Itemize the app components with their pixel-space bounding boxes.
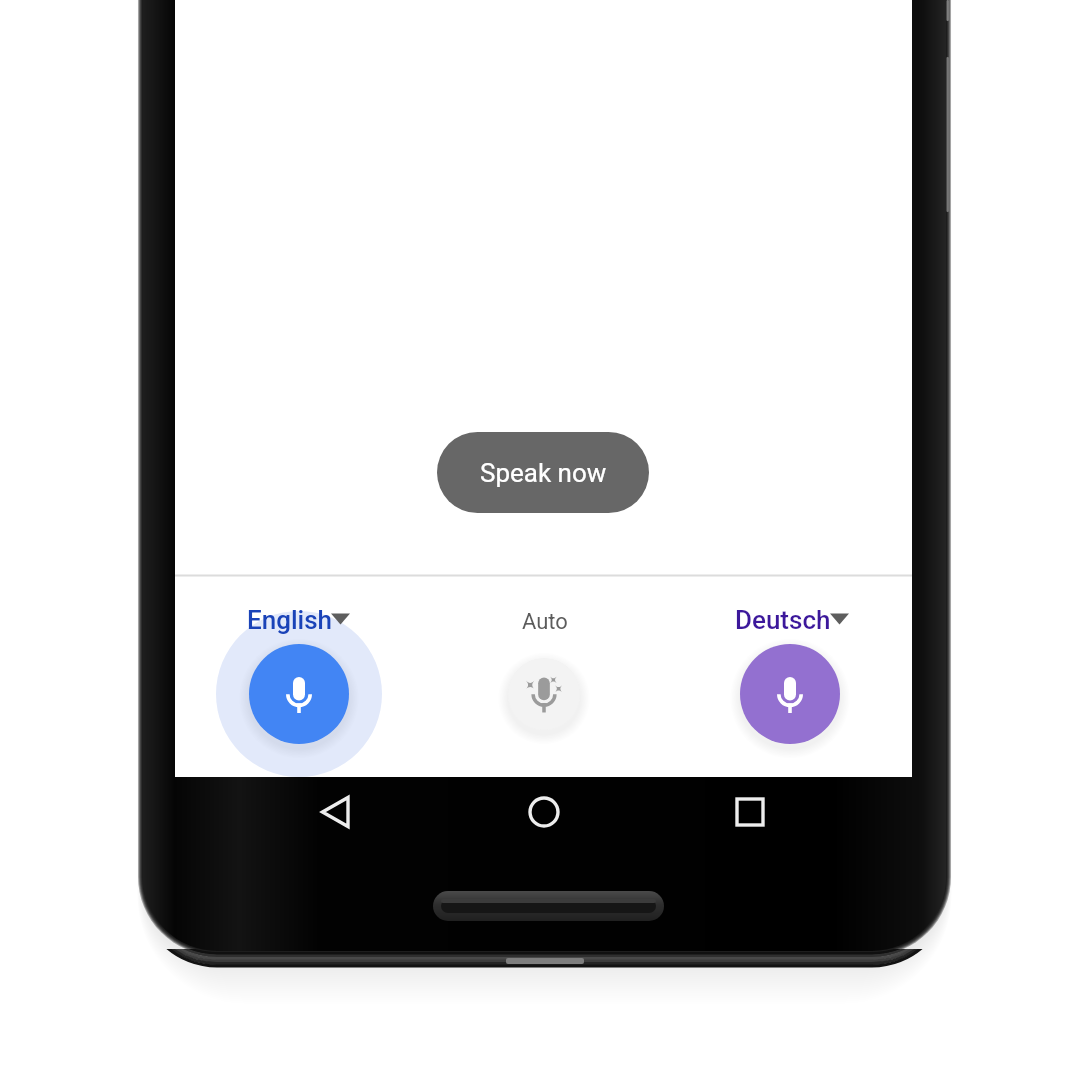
- button[interactable]: Recent apps: [718, 780, 782, 844]
- button[interactable]: Back: [309, 780, 373, 844]
- button[interactable]: Speak German: [740, 644, 840, 744]
- button[interactable]: Speak now: [437, 432, 649, 513]
- staticText: Auto: [522, 609, 568, 635]
- button[interactable]: Deutsch: [721, 595, 843, 625]
- button[interactable]: Home: [512, 780, 576, 844]
- staticText: Deutsch: [735, 605, 831, 635]
- button[interactable]: Speak English: [249, 644, 349, 744]
- staticText: Speak now: [480, 458, 607, 488]
- button[interactable]: Detect language automatically: [508, 658, 580, 730]
- button[interactable]: English: [233, 595, 344, 625]
- staticText: English: [247, 605, 332, 635]
- button[interactable]: Auto: [508, 599, 554, 625]
